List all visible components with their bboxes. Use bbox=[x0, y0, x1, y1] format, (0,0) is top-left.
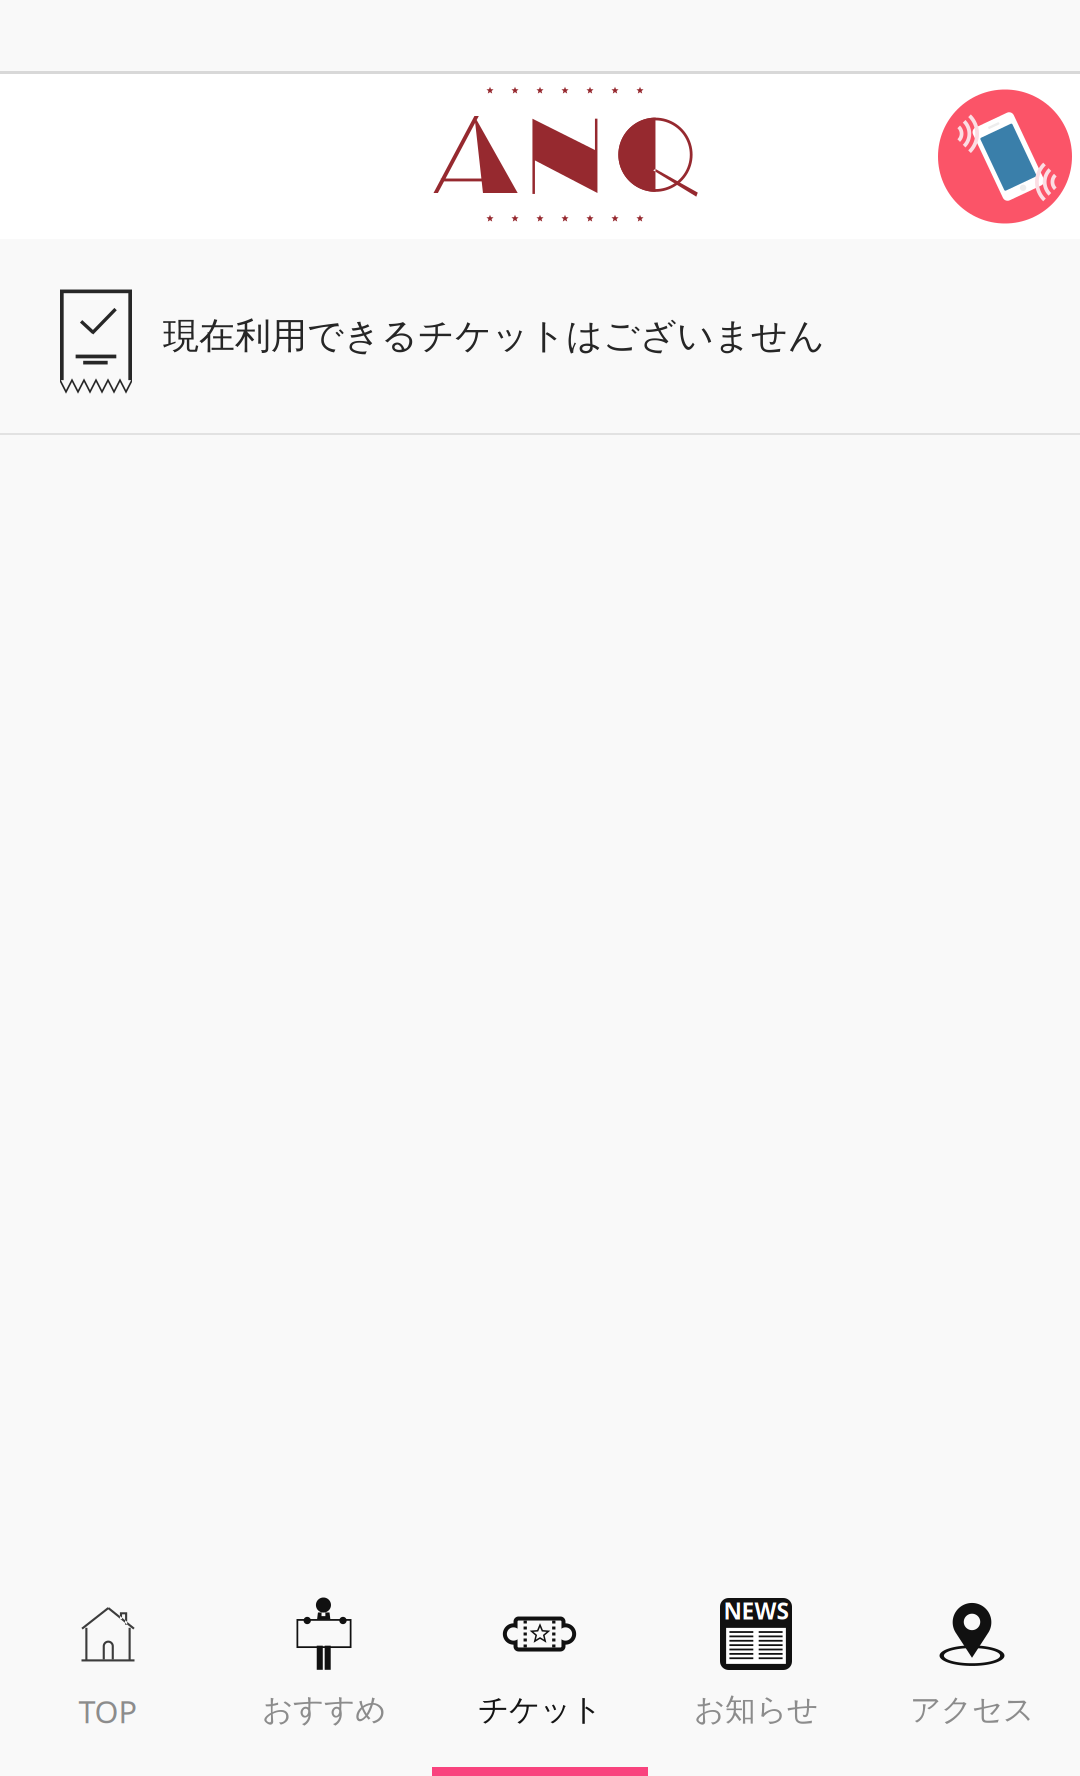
button[interactable]: TOP bbox=[0, 1560, 216, 1776]
staticText: おすすめ bbox=[262, 1691, 386, 1729]
staticText: お知らせ bbox=[694, 1691, 818, 1729]
button[interactable]: おすすめ bbox=[216, 1560, 432, 1776]
button[interactable]: シェイク bbox=[938, 89, 1072, 223]
button[interactable]: アクセス bbox=[864, 1560, 1080, 1776]
staticText: アクセス bbox=[910, 1691, 1034, 1729]
staticText: 現在利用できるチケットはございません bbox=[163, 314, 825, 358]
staticText: NEWS bbox=[723, 1595, 788, 1626]
staticText: TOP bbox=[78, 1691, 137, 1732]
button[interactable]: NEWS bbox=[648, 1560, 864, 1776]
button[interactable]: 現在利用できるチケットはございません bbox=[0, 239, 1080, 433]
button[interactable]: チケット bbox=[432, 1560, 648, 1776]
staticText: チケット bbox=[478, 1691, 602, 1729]
